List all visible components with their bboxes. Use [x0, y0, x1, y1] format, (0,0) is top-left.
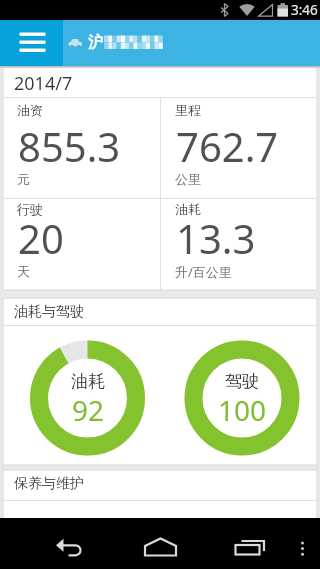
- button[interactable]: [294, 534, 312, 560]
- button[interactable]: [3, 298, 317, 465]
- staticText: 升/百公里: [175, 263, 232, 281]
- staticText: 762.7: [176, 119, 279, 173]
- button[interactable]: [48, 527, 94, 561]
- staticText: 油耗: [175, 201, 201, 217]
- staticText: 行驶: [17, 201, 43, 217]
- button[interactable]: 油耗与驾驶: [3, 298, 317, 465]
- staticText: 公里: [175, 171, 201, 187]
- button[interactable]: 保养与维护: [3, 470, 317, 569]
- staticText: 13.3: [176, 211, 256, 265]
- staticText: 油资: [17, 102, 43, 118]
- staticText: 100: [218, 391, 267, 429]
- staticText: 沪: [88, 33, 103, 52]
- button[interactable]: [0, 20, 63, 66]
- button[interactable]: [226, 527, 272, 561]
- button[interactable]: [3, 298, 317, 465]
- staticText: 20: [18, 211, 64, 265]
- staticText: 里程: [175, 102, 201, 118]
- staticText: 元: [17, 171, 30, 187]
- staticText: 855.3: [18, 119, 121, 173]
- button[interactable]: 沪: [0, 20, 320, 66]
- staticText: 保养与维护: [14, 475, 84, 493]
- staticText: 油耗与驾驶: [14, 303, 84, 321]
- button[interactable]: [137, 527, 183, 561]
- staticText: 天: [17, 263, 30, 279]
- staticText: 油耗: [71, 371, 105, 392]
- staticText: 92: [72, 391, 105, 429]
- staticText: 3:46: [291, 1, 318, 19]
- button[interactable]: 2014/7: [3, 67, 317, 290]
- staticText: 驾驶: [225, 371, 259, 392]
- staticText: 2014/7: [14, 71, 73, 96]
